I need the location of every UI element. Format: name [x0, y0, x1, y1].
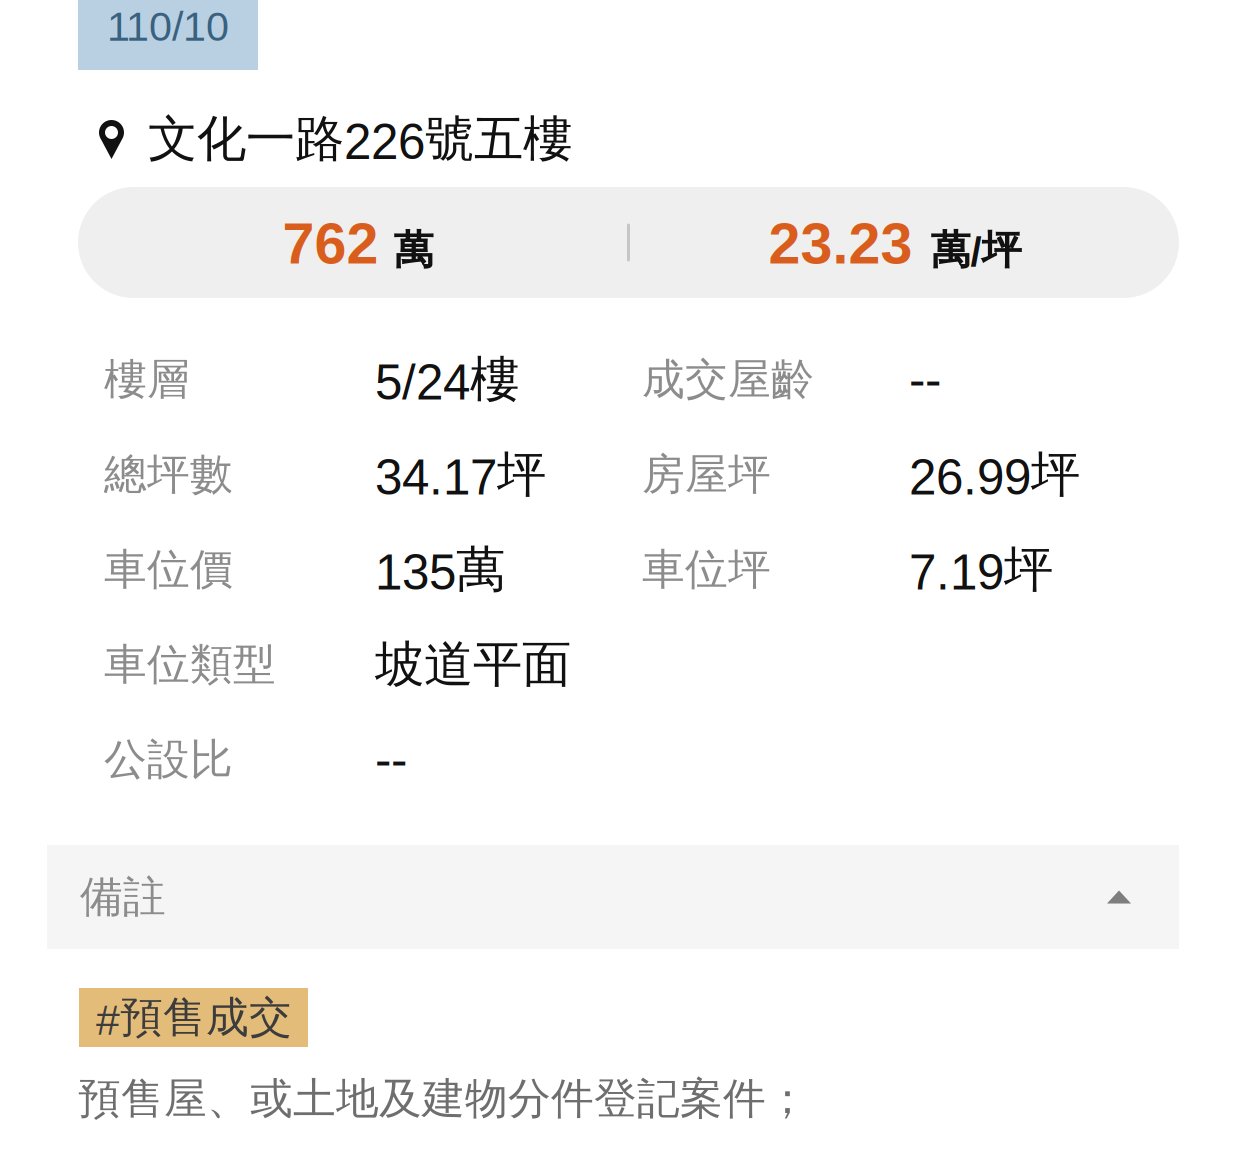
button[interactable]: 文化一路226號五樓	[99, 116, 1179, 162]
staticText: 萬/坪	[930, 225, 1021, 275]
staticText: #預售成交	[96, 991, 292, 1044]
staticText: 7.19坪	[909, 538, 1053, 600]
staticText: 成交屋齡	[642, 353, 814, 406]
staticText: 坡道平面	[375, 633, 571, 695]
staticText: 110/10	[107, 3, 229, 50]
staticText: --	[375, 732, 407, 787]
staticText: 總坪數	[104, 448, 233, 501]
staticText: 房屋坪	[642, 448, 771, 501]
button[interactable]: 備註	[47, 845, 1179, 949]
staticText: 23.23	[768, 211, 912, 276]
staticText: 萬	[393, 225, 433, 275]
staticText: --	[909, 352, 941, 407]
staticText: 備註	[80, 870, 166, 924]
staticText: 車位類型	[104, 638, 276, 691]
staticText: 樓層	[104, 353, 190, 406]
staticText: 文化一路226號五樓	[148, 108, 572, 170]
staticText: 762	[282, 211, 378, 276]
staticText: 135萬	[375, 538, 505, 600]
staticText: 公設比	[104, 733, 233, 786]
staticText: 車位價	[104, 543, 233, 596]
staticText: 車位坪	[642, 543, 771, 596]
staticText: 34.17坪	[375, 443, 546, 505]
staticText: 預售屋、或土地及建物分件登記案件；	[78, 1072, 809, 1126]
staticText: 26.99坪	[909, 443, 1080, 505]
staticText: 5/24樓	[375, 348, 519, 410]
